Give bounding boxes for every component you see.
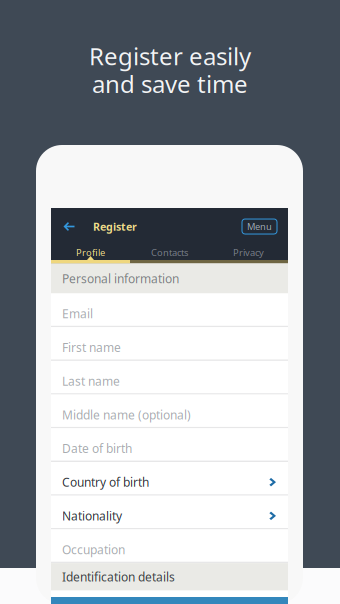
staticText: Identification details — [62, 569, 175, 585]
staticText: Register — [93, 219, 137, 234]
button[interactable]: Email — [51, 293, 288, 327]
staticText: Occupation — [62, 542, 125, 557]
button[interactable]: Country of birth — [51, 462, 288, 496]
button[interactable]: Profile — [51, 245, 130, 260]
button[interactable]: Privacy — [209, 245, 288, 260]
staticText: Date of birth — [62, 440, 132, 456]
staticText: Register easily — [89, 40, 251, 72]
staticText: Contacts — [151, 246, 188, 259]
button[interactable]: Occupation — [51, 529, 288, 563]
button[interactable]: Back — [57, 211, 81, 242]
button[interactable]: Middle name (optional) — [51, 395, 288, 428]
button[interactable]: Nationality — [51, 496, 288, 529]
staticText: First name — [62, 339, 121, 355]
staticText: Country of birth — [62, 474, 149, 490]
staticText: and save time — [92, 68, 248, 100]
staticText: Nationality — [62, 508, 122, 524]
button[interactable]: Contacts — [130, 245, 209, 260]
staticText: Middle name (optional) — [62, 407, 191, 423]
staticText: Profile — [76, 246, 105, 259]
staticText: Personal information — [62, 270, 179, 286]
staticText: Email — [62, 306, 93, 322]
staticText: Menu — [247, 220, 272, 233]
button[interactable]: Last name — [51, 361, 288, 395]
button[interactable]: First name — [51, 327, 288, 361]
staticText: Last name — [62, 373, 120, 389]
staticText: Privacy — [233, 246, 264, 259]
button[interactable]: Menu — [242, 219, 277, 234]
button[interactable]: Date of birth — [51, 428, 288, 462]
